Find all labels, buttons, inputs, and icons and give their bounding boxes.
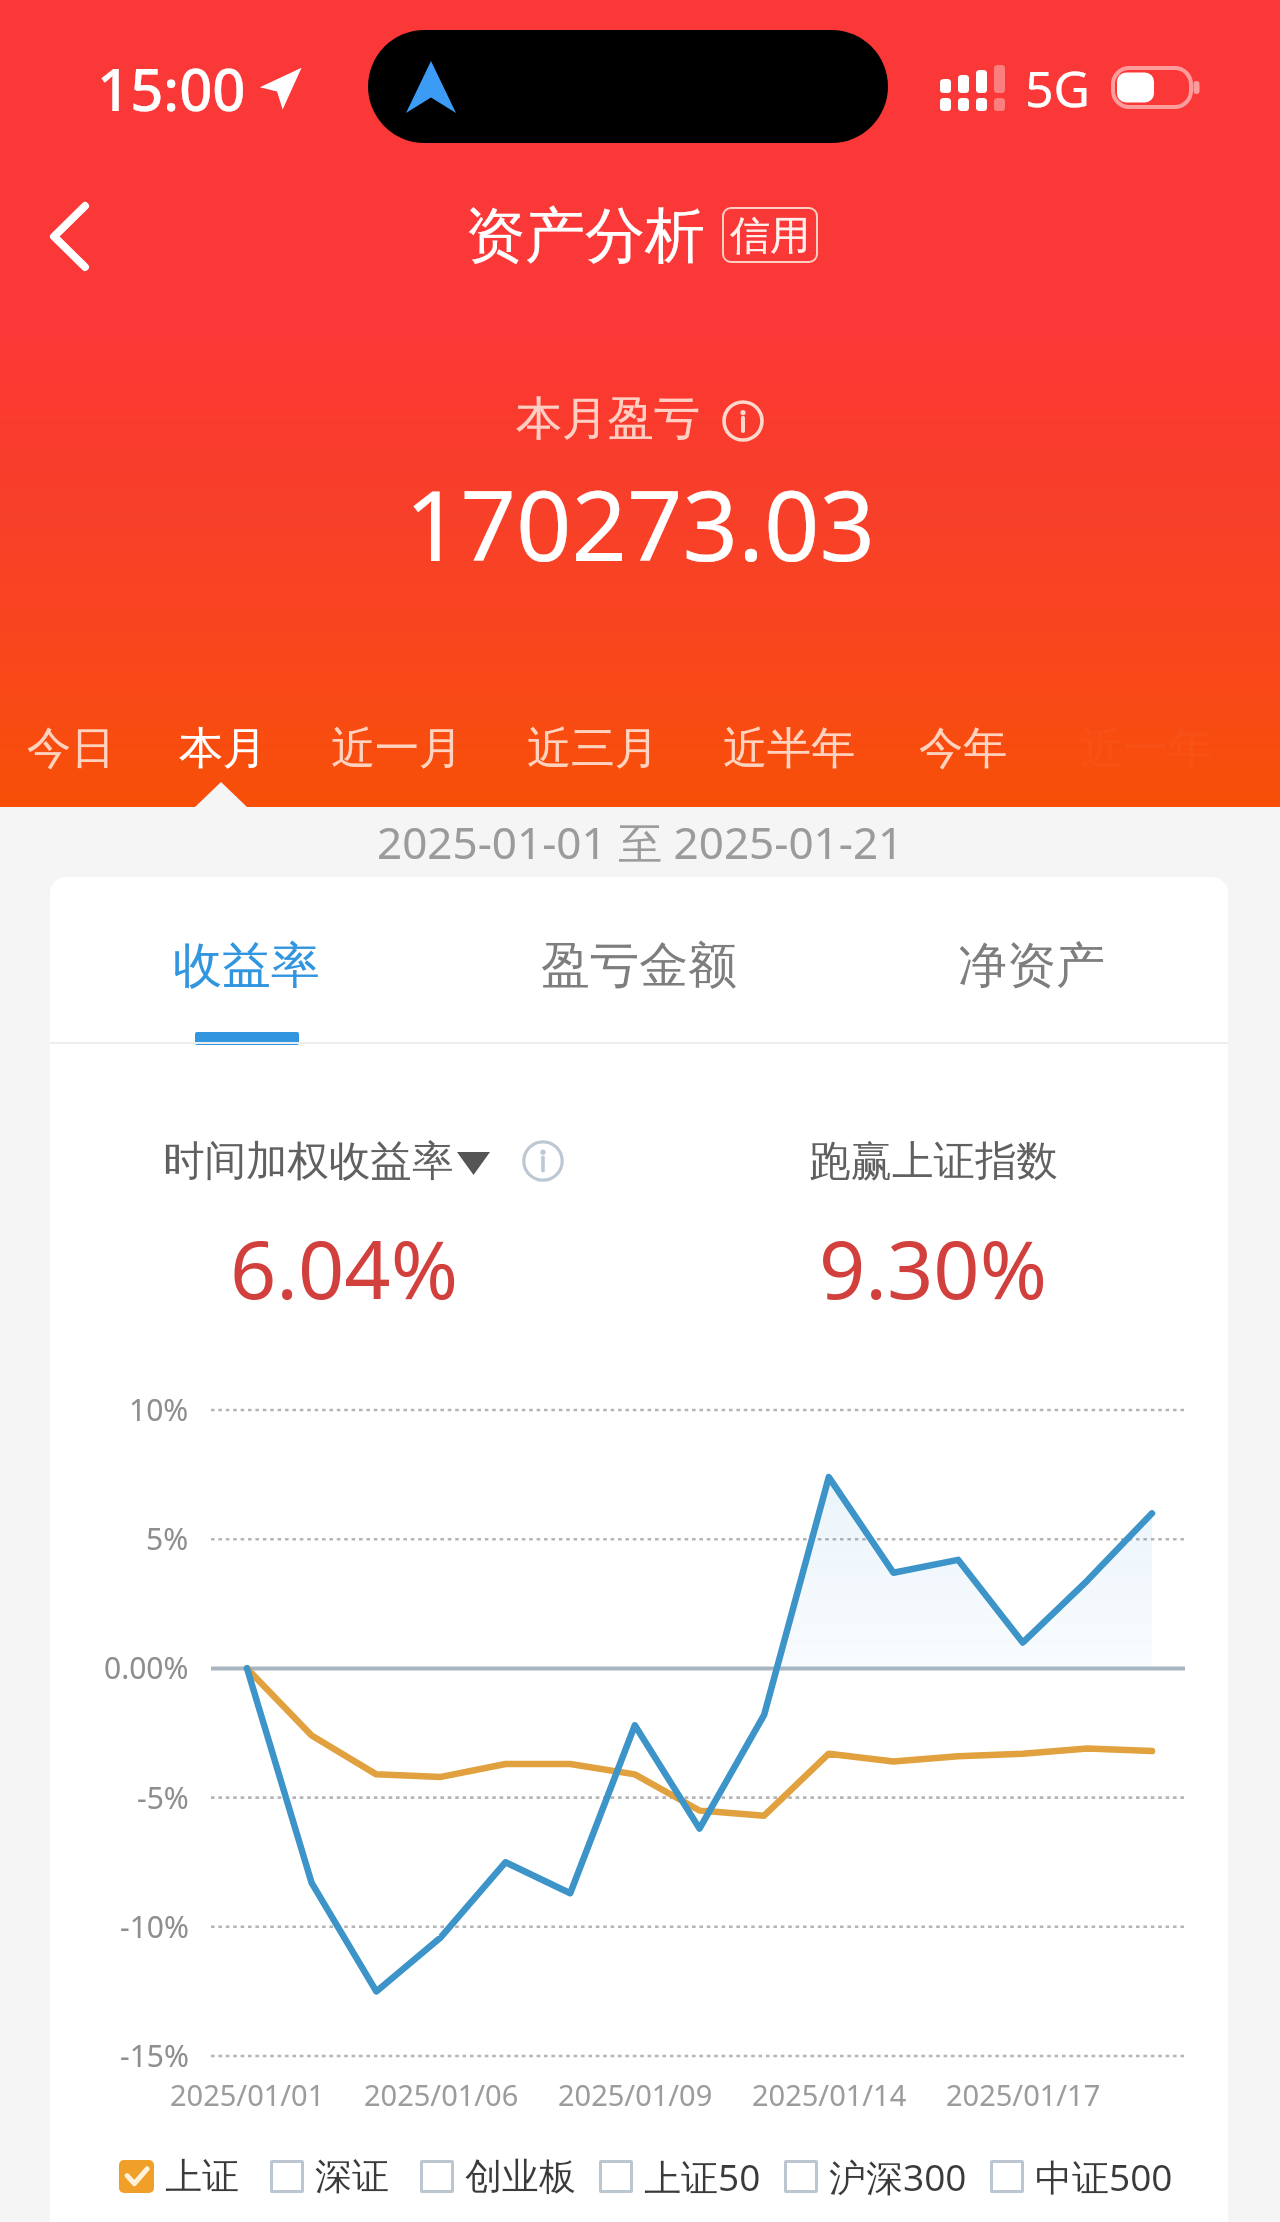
staticText: 跑赢上证指数 <box>809 1135 1058 1187</box>
button[interactable]: 净资产 <box>835 877 1228 1044</box>
button[interactable]: 近半年 <box>691 707 887 807</box>
staticText: 2025-01-01 至 2025-01-21 <box>377 812 904 872</box>
staticText: 近一年 <box>1080 721 1212 776</box>
button[interactable]: 本月盈亏说明 <box>722 400 764 442</box>
staticText: 6.04% <box>230 1212 459 1322</box>
button[interactable]: Back <box>19 186 119 286</box>
staticText: 10% <box>129 1389 189 1430</box>
staticText: 近半年 <box>723 721 855 776</box>
button[interactable]: 上证50 <box>599 2151 784 2202</box>
staticText: 0.00% <box>104 1647 189 1688</box>
staticText: 信用 <box>730 210 810 260</box>
staticText: 5G <box>1025 54 1090 122</box>
staticText: -5% <box>137 1777 189 1818</box>
staticText: 创业板 <box>465 2153 576 2200</box>
button[interactable]: 近三月 <box>495 707 691 807</box>
staticText: 本月 <box>179 721 267 776</box>
button[interactable]: 收益率说明 <box>522 1140 564 1182</box>
staticText: 今年 <box>919 721 1007 776</box>
staticText: 15:00 <box>97 49 246 128</box>
staticText: -15% <box>120 2035 189 2076</box>
staticText: 5% <box>146 1518 189 1559</box>
staticText: 近一月 <box>331 721 463 776</box>
staticText: 2025/01/14 <box>752 2075 907 2114</box>
button[interactable]: 时间加权收益率 <box>163 1135 490 1187</box>
button[interactable]: 中证500 <box>990 2151 1196 2202</box>
staticText: -10% <box>120 1906 189 1947</box>
staticText: 2025/01/01 <box>170 2075 325 2114</box>
button[interactable]: 沪深300 <box>784 2151 990 2202</box>
staticText: 沪深300 <box>829 2151 967 2202</box>
staticText: 深证 <box>315 2153 389 2200</box>
staticText: 本月盈亏 <box>516 390 700 448</box>
button[interactable]: 今年 <box>887 707 1039 807</box>
button[interactable]: 收益率 <box>50 877 442 1044</box>
staticText: 今日 <box>27 721 115 776</box>
staticText: 收益率 <box>173 935 320 997</box>
staticText: 盈亏金额 <box>541 935 737 997</box>
staticText: 时间加权收益率 <box>163 1135 454 1187</box>
button[interactable]: 盈亏金额 <box>442 877 835 1044</box>
staticText: 2025/01/06 <box>364 2075 519 2114</box>
staticText: 近三月 <box>527 721 659 776</box>
staticText: 资产分析 <box>465 198 705 274</box>
button[interactable]: 本月 <box>147 707 299 807</box>
button[interactable]: 创业板 <box>420 2153 599 2200</box>
staticText: 2025/01/17 <box>946 2075 1101 2114</box>
staticText: 上证 <box>165 2153 239 2200</box>
button[interactable]: 今日 <box>0 707 147 807</box>
staticText: 170273.03 <box>405 457 875 589</box>
staticText: 净资产 <box>958 935 1105 997</box>
button[interactable]: 近一月 <box>299 707 495 807</box>
button[interactable]: 深证 <box>270 2153 420 2200</box>
staticText: 9.30% <box>819 1212 1048 1322</box>
button[interactable]: 上证 <box>119 2153 270 2200</box>
staticText: 上证50 <box>644 2151 761 2202</box>
staticText: 中证500 <box>1035 2151 1173 2202</box>
staticText: 2025/01/09 <box>558 2075 713 2114</box>
